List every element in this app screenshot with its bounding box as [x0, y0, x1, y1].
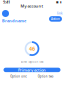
- staticText: Action: [51, 17, 60, 21]
- staticText: Option one: [10, 75, 27, 78]
- staticText: Brandname: [2, 18, 26, 23]
- staticText: My account: [20, 3, 43, 9]
- staticText: 46: [29, 45, 35, 52]
- staticText: 9:41: [3, 0, 10, 5]
- staticText: Option two: [38, 75, 54, 78]
- button[interactable]: Primary action: [3, 68, 60, 72]
- staticText: Some caption text: [20, 60, 43, 64]
- button[interactable]: Action: [49, 16, 62, 22]
- staticText: ■ ▮: [56, 0, 61, 3]
- staticText: link: [57, 12, 62, 15]
- staticText: Primary action: [18, 67, 46, 72]
